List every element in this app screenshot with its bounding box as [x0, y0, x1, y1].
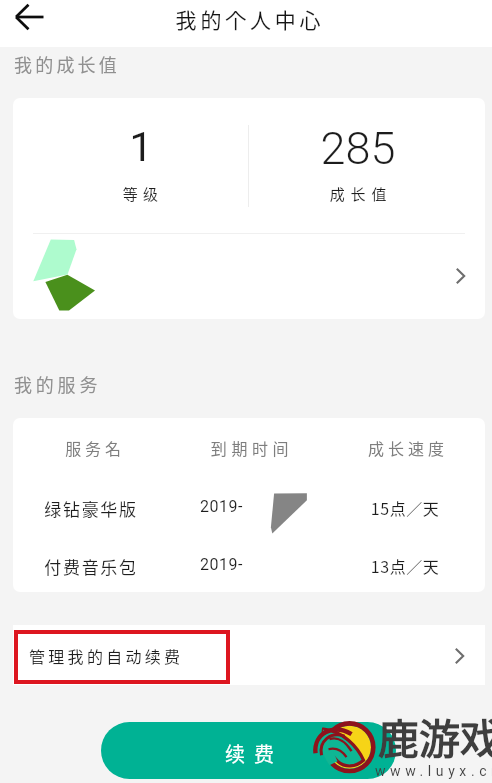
staticText: 我的成长值: [14, 51, 234, 783]
staticText: 服务名: [15, 436, 175, 783]
staticText: 到期时间: [172, 436, 332, 783]
staticText: 2019-: [200, 497, 360, 783]
staticText: www.luyx.cn: [375, 763, 492, 779]
staticText: 绿钻豪华版: [11, 496, 171, 783]
staticText: 成长值: [281, 183, 441, 783]
staticText: 续费: [225, 739, 283, 768]
staticText: 13点／天: [325, 554, 485, 783]
staticText: 1: [61, 123, 221, 783]
staticText: 鹿游戏: [378, 706, 492, 765]
staticText: 285: [278, 122, 438, 783]
staticText: 15点／天: [325, 496, 485, 783]
staticText: 管理我的自动续费: [29, 644, 184, 667]
button[interactable]: 续费: [101, 722, 396, 779]
button[interactable]: [13, 234, 485, 319]
button[interactable]: Back: [0, 0, 56, 47]
staticText: 2019-: [200, 555, 360, 783]
staticText: 我的服务: [14, 371, 234, 783]
staticText: 付费音乐包: [11, 554, 171, 783]
staticText: 我的个人中心: [100, 4, 400, 783]
button[interactable]: 管理我的自动续费: [13, 625, 485, 685]
staticText: 成长速度: [328, 436, 488, 783]
staticText: 等级: [63, 183, 223, 783]
